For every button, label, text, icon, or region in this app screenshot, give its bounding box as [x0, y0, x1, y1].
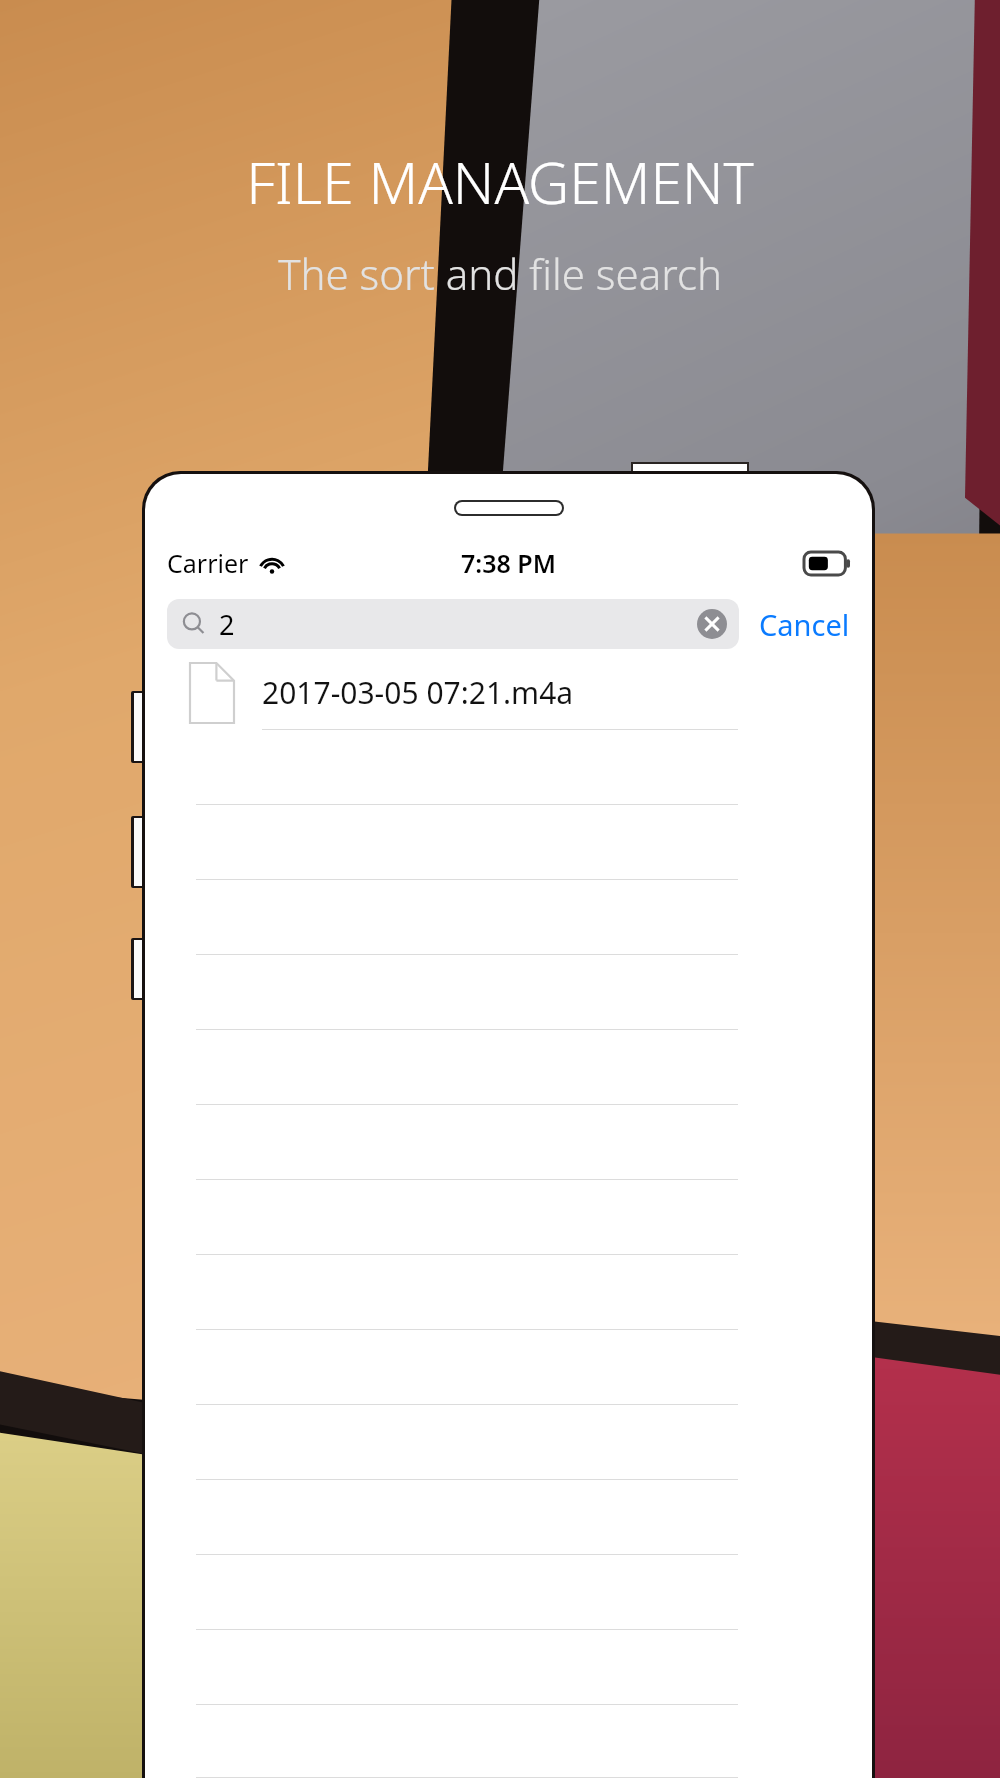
staticText: 7:38 PM — [461, 546, 556, 580]
other: Side button — [134, 818, 144, 886]
button[interactable] — [145, 1630, 872, 1705]
button[interactable] — [145, 1480, 872, 1555]
button[interactable]: 2017-03-05 07:21.m4a — [145, 655, 872, 730]
button[interactable]: Clear text — [697, 609, 727, 639]
staticText: 2017-03-05 07:21.m4a — [262, 672, 574, 713]
button[interactable]: Cancel — [739, 605, 854, 644]
staticText: Carrier — [167, 546, 249, 580]
other: Side button — [134, 940, 144, 998]
button[interactable] — [145, 1255, 872, 1330]
button[interactable] — [145, 1405, 872, 1480]
staticText: 2 — [219, 606, 235, 643]
button[interactable]: 2 — [167, 599, 739, 649]
button[interactable] — [145, 1180, 872, 1255]
button[interactable] — [145, 1330, 872, 1405]
button[interactable] — [145, 1555, 872, 1630]
staticText: Cancel — [759, 605, 850, 644]
button[interactable] — [145, 1705, 872, 1778]
button[interactable] — [145, 1105, 872, 1180]
button[interactable] — [145, 1030, 872, 1105]
button[interactable] — [145, 880, 872, 955]
staticText: The sort and file search — [278, 245, 722, 302]
button[interactable] — [145, 730, 872, 805]
staticText: FILE MANAGEMENT — [246, 143, 754, 221]
button[interactable] — [145, 955, 872, 1030]
other: Side button — [134, 693, 144, 761]
button[interactable] — [145, 805, 872, 880]
